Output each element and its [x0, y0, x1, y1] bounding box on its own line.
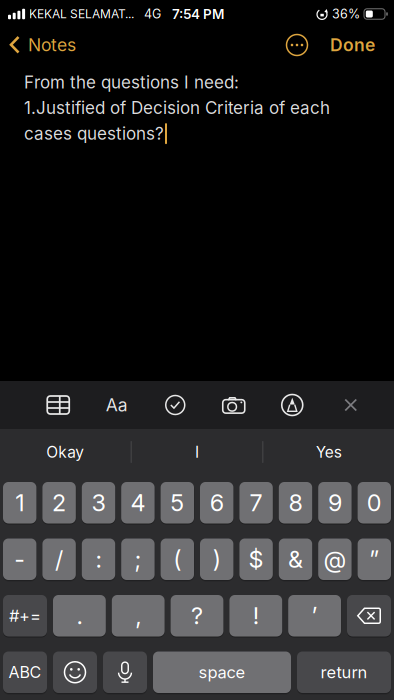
button[interactable]: Markup [263, 394, 321, 416]
staticText: 2 [52, 488, 66, 517]
button[interactable]: Insert table [29, 395, 87, 415]
button[interactable]: Emoji [53, 651, 97, 693]
button[interactable]: 0 [358, 482, 391, 523]
button[interactable]: Formatting [87, 394, 146, 416]
staticText: 3 [91, 488, 105, 517]
staticText: space [198, 662, 245, 682]
button[interactable]: ; [121, 538, 155, 580]
button[interactable]: ABC [3, 651, 47, 693]
staticText: , [135, 601, 141, 630]
button[interactable]: ” [358, 538, 391, 580]
button[interactable]: ? [171, 595, 223, 636]
staticText: Aa [106, 394, 128, 416]
staticText: 36% [332, 6, 360, 21]
button[interactable]: ) [200, 538, 233, 580]
button[interactable]: Done [308, 34, 394, 56]
button[interactable]: 6 [200, 482, 233, 523]
staticText: 0 [367, 488, 382, 517]
staticText: 6 [210, 488, 224, 517]
button[interactable]: Delete [347, 595, 391, 636]
staticText: 7 [250, 488, 263, 517]
staticText: ( [173, 545, 181, 573]
staticText: Done [330, 34, 375, 56]
staticText: I [195, 443, 199, 461]
staticText: ! [253, 601, 259, 630]
staticText: 7:54 PM [172, 6, 224, 22]
button[interactable]: : [82, 538, 115, 580]
staticText: - [14, 545, 25, 573]
button[interactable]: Notes [0, 34, 76, 56]
staticText: 9 [328, 488, 342, 517]
button[interactable]: #+= [3, 595, 47, 636]
staticText: 1 [15, 488, 24, 517]
button[interactable]: Okay [0, 443, 131, 461]
button[interactable]: return [297, 651, 391, 693]
staticText: 8 [288, 488, 302, 517]
button[interactable]: Checklist [146, 395, 204, 415]
button[interactable]: 1 [3, 482, 36, 523]
button[interactable]: - [3, 538, 36, 580]
staticText: KEKAL SELAMAT... [29, 7, 134, 21]
button[interactable]: , [112, 595, 165, 636]
button[interactable]: More [286, 34, 308, 56]
button[interactable]: / [42, 538, 76, 580]
button[interactable]: . [53, 595, 106, 636]
button[interactable]: 5 [161, 482, 194, 523]
staticText: 5 [170, 488, 184, 517]
staticText: ’ [312, 601, 318, 630]
staticText: ABC [8, 663, 41, 682]
button[interactable]: space [153, 651, 291, 693]
button[interactable]: 4 [121, 482, 155, 523]
button[interactable]: I [132, 443, 262, 461]
staticText: From the questions I need: [24, 72, 239, 93]
button[interactable]: ! [229, 595, 282, 636]
staticText: ) [213, 545, 221, 573]
staticText: return [320, 662, 367, 682]
button[interactable]: Dictate [103, 651, 147, 693]
staticText: / [55, 545, 63, 573]
button[interactable]: Dismiss keyboard [321, 399, 380, 411]
staticText: ? [191, 601, 203, 630]
button[interactable]: ’ [288, 595, 341, 636]
button[interactable]: 9 [318, 482, 352, 523]
staticText: Okay [46, 443, 84, 461]
button[interactable]: $ [239, 538, 273, 580]
staticText: ” [369, 545, 379, 573]
button[interactable]: Yes [263, 443, 394, 461]
staticText: : [95, 545, 101, 573]
staticText: 1.Justified of Decision Criteria of each [24, 98, 330, 118]
button[interactable]: Camera [204, 396, 263, 414]
staticText: 4 [130, 488, 145, 517]
staticText: Yes [316, 443, 342, 461]
staticText: ; [134, 545, 141, 573]
button[interactable]: 2 [42, 482, 76, 523]
staticText: @ [323, 545, 346, 573]
button[interactable]: @ [318, 538, 352, 580]
button[interactable]: & [279, 538, 312, 580]
staticText: cases questions? [24, 123, 164, 144]
button[interactable]: 8 [279, 482, 312, 523]
staticText: $ [249, 545, 264, 573]
button[interactable]: ( [161, 538, 194, 580]
button[interactable]: 7 [239, 482, 273, 523]
button[interactable]: 3 [82, 482, 115, 523]
staticText: #+= [9, 606, 41, 626]
staticText: Notes [28, 34, 76, 56]
staticText: & [288, 545, 303, 573]
staticText: . [76, 601, 82, 630]
staticText: 4G [144, 6, 161, 21]
